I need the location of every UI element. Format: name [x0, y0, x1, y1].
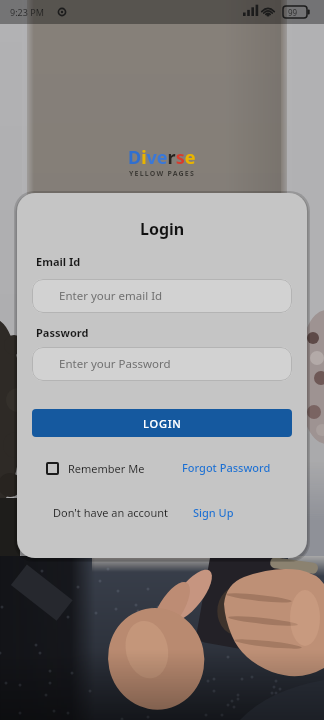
staticText: LOGIN: [143, 416, 182, 431]
staticText: Enter your email Id: [59, 288, 163, 304]
staticText: 99: [288, 7, 298, 18]
staticText: Remember Me: [68, 461, 145, 476]
button[interactable]: Sign Up: [190, 502, 237, 523]
button[interactable]: Enter your Password: [32, 347, 292, 381]
staticText: Password: [36, 325, 89, 340]
button[interactable]: Enter your email Id: [32, 279, 292, 313]
button[interactable]: Forgot Password: [180, 458, 273, 477]
staticText: 9:23 PM: [10, 6, 44, 18]
staticText: Login: [140, 218, 185, 240]
button[interactable]: LOGIN: [32, 409, 292, 437]
staticText: Forgot Password: [182, 460, 271, 475]
staticText: Email Id: [36, 254, 81, 269]
staticText: YELLOW PAGES: [129, 169, 195, 179]
staticText: Sign Up: [193, 505, 234, 520]
staticText: Don't have an account: [53, 505, 169, 520]
button[interactable]: Remember Me: [46, 461, 145, 476]
staticText: Enter your Password: [59, 356, 171, 372]
staticText: Diverse: [128, 145, 196, 170]
